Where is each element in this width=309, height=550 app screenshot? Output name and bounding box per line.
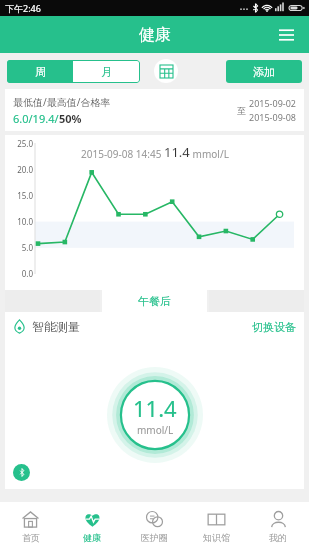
button[interactable]: Calendar	[154, 59, 178, 83]
staticText: mmol/L	[190, 147, 229, 161]
staticText: 我的	[269, 532, 287, 543]
button[interactable]: 添加	[226, 60, 302, 83]
staticText: 首页	[22, 532, 40, 543]
button[interactable]: 切换设备	[252, 320, 296, 334]
staticText: 10.0	[9, 216, 33, 227]
button[interactable]: Bluetooth	[13, 464, 30, 481]
button[interactable]: 首页	[0, 502, 61, 550]
staticText: 25.0	[9, 138, 33, 149]
staticText: 20.0	[9, 164, 33, 175]
staticText: 健康	[83, 532, 101, 543]
button[interactable]: 午餐后	[102, 290, 207, 312]
staticText: 2015-09-02	[249, 97, 296, 109]
staticText: 切换设备	[252, 320, 296, 334]
staticText: mmol/L	[137, 423, 174, 437]
button[interactable]: 月	[73, 60, 140, 83]
staticText: 5.0	[9, 242, 33, 253]
staticText: 15.0	[9, 190, 33, 201]
staticText: 医护圈	[141, 532, 168, 543]
staticText: 6.0/19.4/	[13, 111, 59, 126]
button[interactable]: 健康	[61, 502, 123, 550]
staticText: 周	[35, 65, 46, 79]
staticText: 2015-09-08 14:45	[81, 147, 164, 161]
button[interactable]: Menu	[273, 22, 299, 48]
staticText: 智能测量	[32, 319, 80, 334]
staticText: 知识馆	[203, 532, 230, 543]
button[interactable]: 知识馆	[185, 502, 247, 550]
staticText: 11.4	[164, 143, 190, 161]
staticText: 至	[237, 105, 246, 116]
staticText: 午餐后	[138, 294, 171, 308]
staticText: 2015-09-08	[249, 111, 296, 123]
staticText: 11.4	[133, 393, 177, 423]
staticText: 健康	[139, 25, 171, 45]
button[interactable]: 医护圈	[123, 502, 185, 550]
button[interactable]: 周	[7, 60, 73, 83]
staticText: 下午2:46	[5, 2, 41, 14]
staticText: 50%	[59, 111, 82, 126]
staticText: 0.0	[9, 268, 33, 279]
button[interactable]: 我的	[247, 502, 309, 550]
staticText: 月	[101, 65, 112, 79]
staticText: 最低值/最高值/合格率	[13, 95, 111, 109]
staticText: 添加	[253, 65, 275, 79]
